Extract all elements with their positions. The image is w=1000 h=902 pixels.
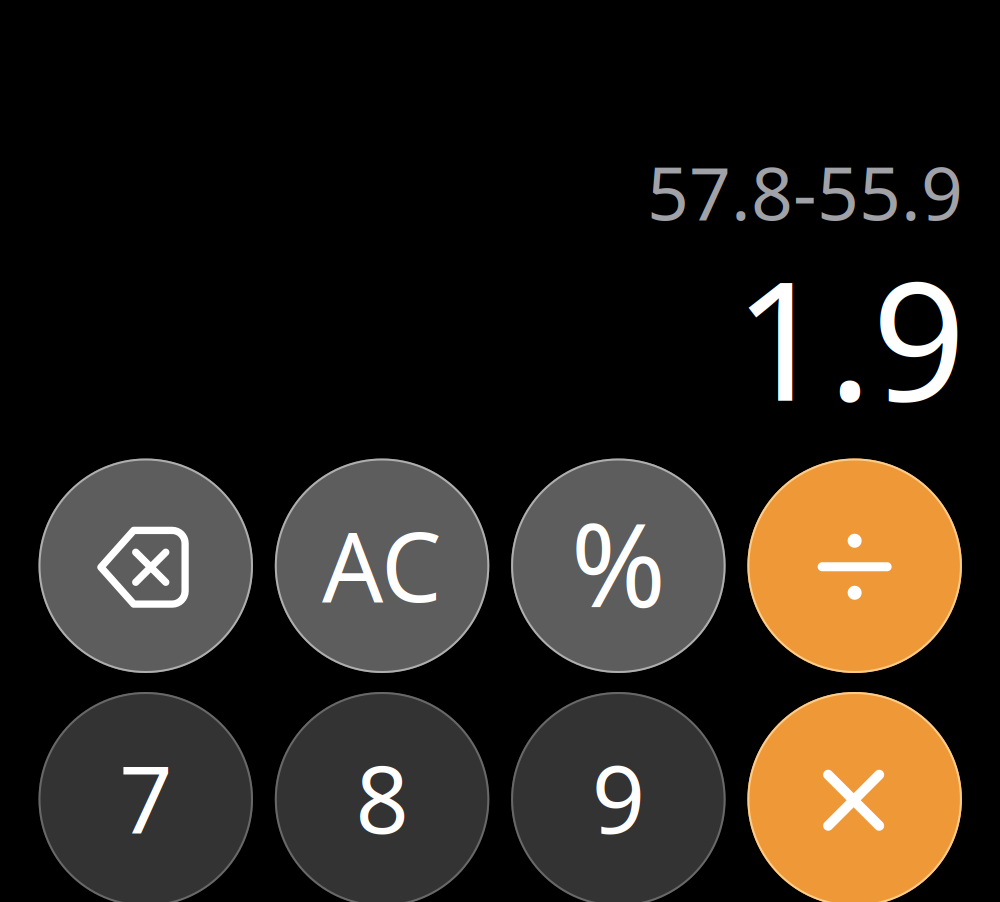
button[interactable]: % <box>511 458 726 673</box>
button[interactable]: Divide <box>747 458 962 673</box>
button[interactable]: 8 <box>275 692 489 902</box>
button[interactable]: Delete <box>38 458 253 673</box>
staticText: 7 <box>119 735 172 859</box>
button[interactable]: 9 <box>511 692 726 902</box>
staticText: % <box>571 487 666 639</box>
staticText: 8 <box>356 735 409 859</box>
staticText: AC <box>322 501 442 628</box>
button[interactable]: AC <box>275 458 489 673</box>
staticText: 1.9 <box>734 228 966 446</box>
staticText: 9 <box>592 735 645 859</box>
button[interactable]: Multiply <box>747 692 962 902</box>
staticText: 57.8-55.9 <box>647 143 963 241</box>
button[interactable]: 7 <box>38 692 253 902</box>
